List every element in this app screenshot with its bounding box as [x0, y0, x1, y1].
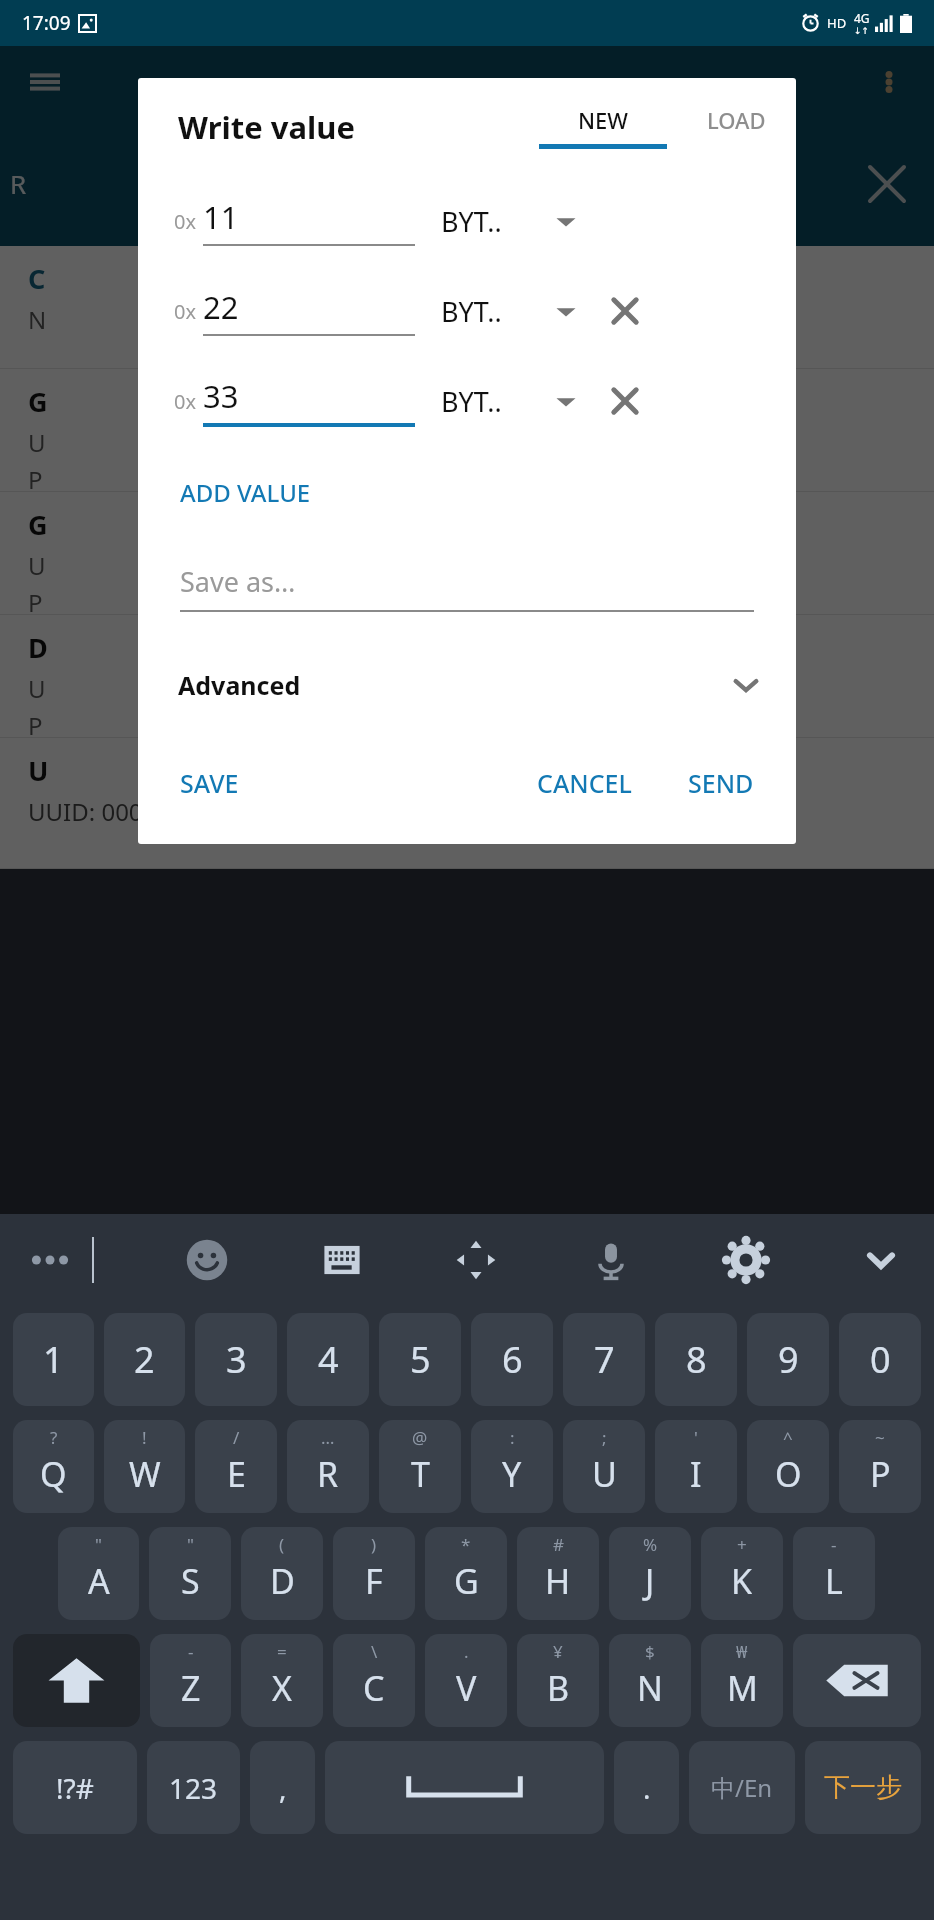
button[interactable]: ": [58, 1527, 139, 1620]
button[interactable]: LOAD: [699, 101, 774, 153]
button[interactable]: Remove value: [605, 381, 645, 421]
staticText: C: [363, 1665, 385, 1711]
button[interactable]: @: [379, 1420, 461, 1513]
button[interactable]: Emoji: [184, 1237, 230, 1283]
button[interactable]: 下一步: [805, 1741, 921, 1834]
button[interactable]: …: [287, 1420, 369, 1513]
button[interactable]: !?#: [13, 1741, 137, 1834]
button[interactable]: Select type: [549, 294, 583, 328]
staticText: 9: [778, 1335, 799, 1384]
button[interactable]: Space: [325, 1741, 604, 1834]
staticText: .: [643, 1769, 651, 1807]
button[interactable]: 1: [13, 1313, 94, 1406]
button[interactable]: 8: [655, 1313, 737, 1406]
staticText: LOAD: [707, 105, 766, 135]
staticText: -: [188, 1640, 194, 1663]
button[interactable]: *: [425, 1527, 507, 1620]
button[interactable]: \: [333, 1634, 415, 1727]
button[interactable]: Select type: [549, 384, 583, 418]
button[interactable]: 3: [195, 1313, 277, 1406]
staticText: H: [545, 1558, 571, 1604]
staticText: 5: [410, 1335, 431, 1384]
button[interactable]: Voice input: [588, 1237, 634, 1283]
staticText: K: [731, 1558, 753, 1604]
staticText: 1: [43, 1335, 64, 1384]
staticText: A: [88, 1558, 110, 1604]
staticText: P: [28, 463, 43, 491]
button[interactable]: 中/En: [689, 1741, 795, 1834]
button[interactable]: Advanced: [138, 662, 796, 708]
button[interactable]: 7: [563, 1313, 645, 1406]
button[interactable]: SEND: [684, 762, 758, 804]
button[interactable]: ,: [250, 1741, 315, 1834]
button[interactable]: ^: [747, 1420, 829, 1513]
button[interactable]: SAVE: [176, 762, 243, 804]
button[interactable]: Select type: [549, 204, 583, 238]
staticText: G: [28, 383, 48, 420]
button[interactable]: !: [104, 1420, 185, 1513]
staticText: W: [129, 1451, 161, 1497]
button[interactable]: ¥: [517, 1634, 599, 1727]
button[interactable]: CANCEL: [533, 762, 636, 804]
button[interactable]: Shift: [13, 1634, 140, 1727]
staticText: ADD VALUE: [180, 476, 311, 509]
button[interactable]: More: [874, 67, 904, 97]
button[interactable]: Keyboard layout: [320, 1238, 364, 1282]
staticText: ,: [279, 1769, 287, 1807]
staticText: N: [28, 303, 47, 336]
button[interactable]: BYT..: [441, 383, 549, 420]
button[interactable]: ;: [563, 1420, 645, 1513]
button[interactable]: /: [195, 1420, 277, 1513]
button[interactable]: 123: [147, 1741, 240, 1834]
staticText: ↓↑: [854, 26, 870, 36]
button[interactable]: BYT..: [441, 203, 549, 240]
button[interactable]: .: [614, 1741, 679, 1834]
button[interactable]: -: [150, 1634, 231, 1727]
staticText: :: [510, 1426, 515, 1449]
button[interactable]: #: [517, 1527, 599, 1620]
staticText: ": [95, 1533, 102, 1556]
button[interactable]: ': [655, 1420, 737, 1513]
staticText: U: [592, 1451, 617, 1497]
button[interactable]: Settings: [723, 1237, 769, 1283]
staticText: %: [643, 1533, 658, 1556]
staticText: Save as…: [180, 563, 296, 600]
button[interactable]: (: [241, 1527, 323, 1620]
button[interactable]: .: [425, 1634, 507, 1727]
staticText: 2: [134, 1335, 155, 1384]
button[interactable]: :: [471, 1420, 553, 1513]
button[interactable]: 6: [471, 1313, 553, 1406]
staticText: ¥: [553, 1640, 563, 1663]
staticText: D: [270, 1558, 295, 1604]
button[interactable]: Backspace: [793, 1634, 921, 1727]
button[interactable]: Move cursor: [453, 1237, 499, 1283]
staticText: U: [28, 549, 46, 582]
button[interactable]: +: [701, 1527, 783, 1620]
button[interactable]: ?: [13, 1420, 94, 1513]
button[interactable]: 5: [379, 1313, 461, 1406]
staticText: !?#: [56, 1769, 94, 1807]
button[interactable]: 0: [839, 1313, 921, 1406]
button[interactable]: ): [333, 1527, 415, 1620]
button[interactable]: ADD VALUE: [178, 470, 313, 515]
button[interactable]: NEW: [531, 105, 675, 149]
button[interactable]: %: [609, 1527, 691, 1620]
button[interactable]: ~: [839, 1420, 921, 1513]
button[interactable]: Hide keyboard: [858, 1237, 904, 1283]
staticText: 0x: [174, 298, 197, 325]
button[interactable]: ₩: [701, 1634, 783, 1727]
button[interactable]: $: [609, 1634, 691, 1727]
button[interactable]: ": [149, 1527, 231, 1620]
staticText: J: [645, 1558, 655, 1604]
button[interactable]: Menu: [30, 67, 60, 97]
button[interactable]: =: [241, 1634, 323, 1727]
button[interactable]: BYT..: [441, 293, 549, 330]
staticText: 0x: [174, 208, 197, 235]
button[interactable]: 4: [287, 1313, 369, 1406]
button[interactable]: -: [793, 1527, 875, 1620]
staticText: =: [277, 1640, 287, 1663]
button[interactable]: 9: [747, 1313, 829, 1406]
button[interactable]: Remove value: [605, 291, 645, 331]
button[interactable]: More options: [30, 1240, 70, 1280]
button[interactable]: 2: [104, 1313, 185, 1406]
